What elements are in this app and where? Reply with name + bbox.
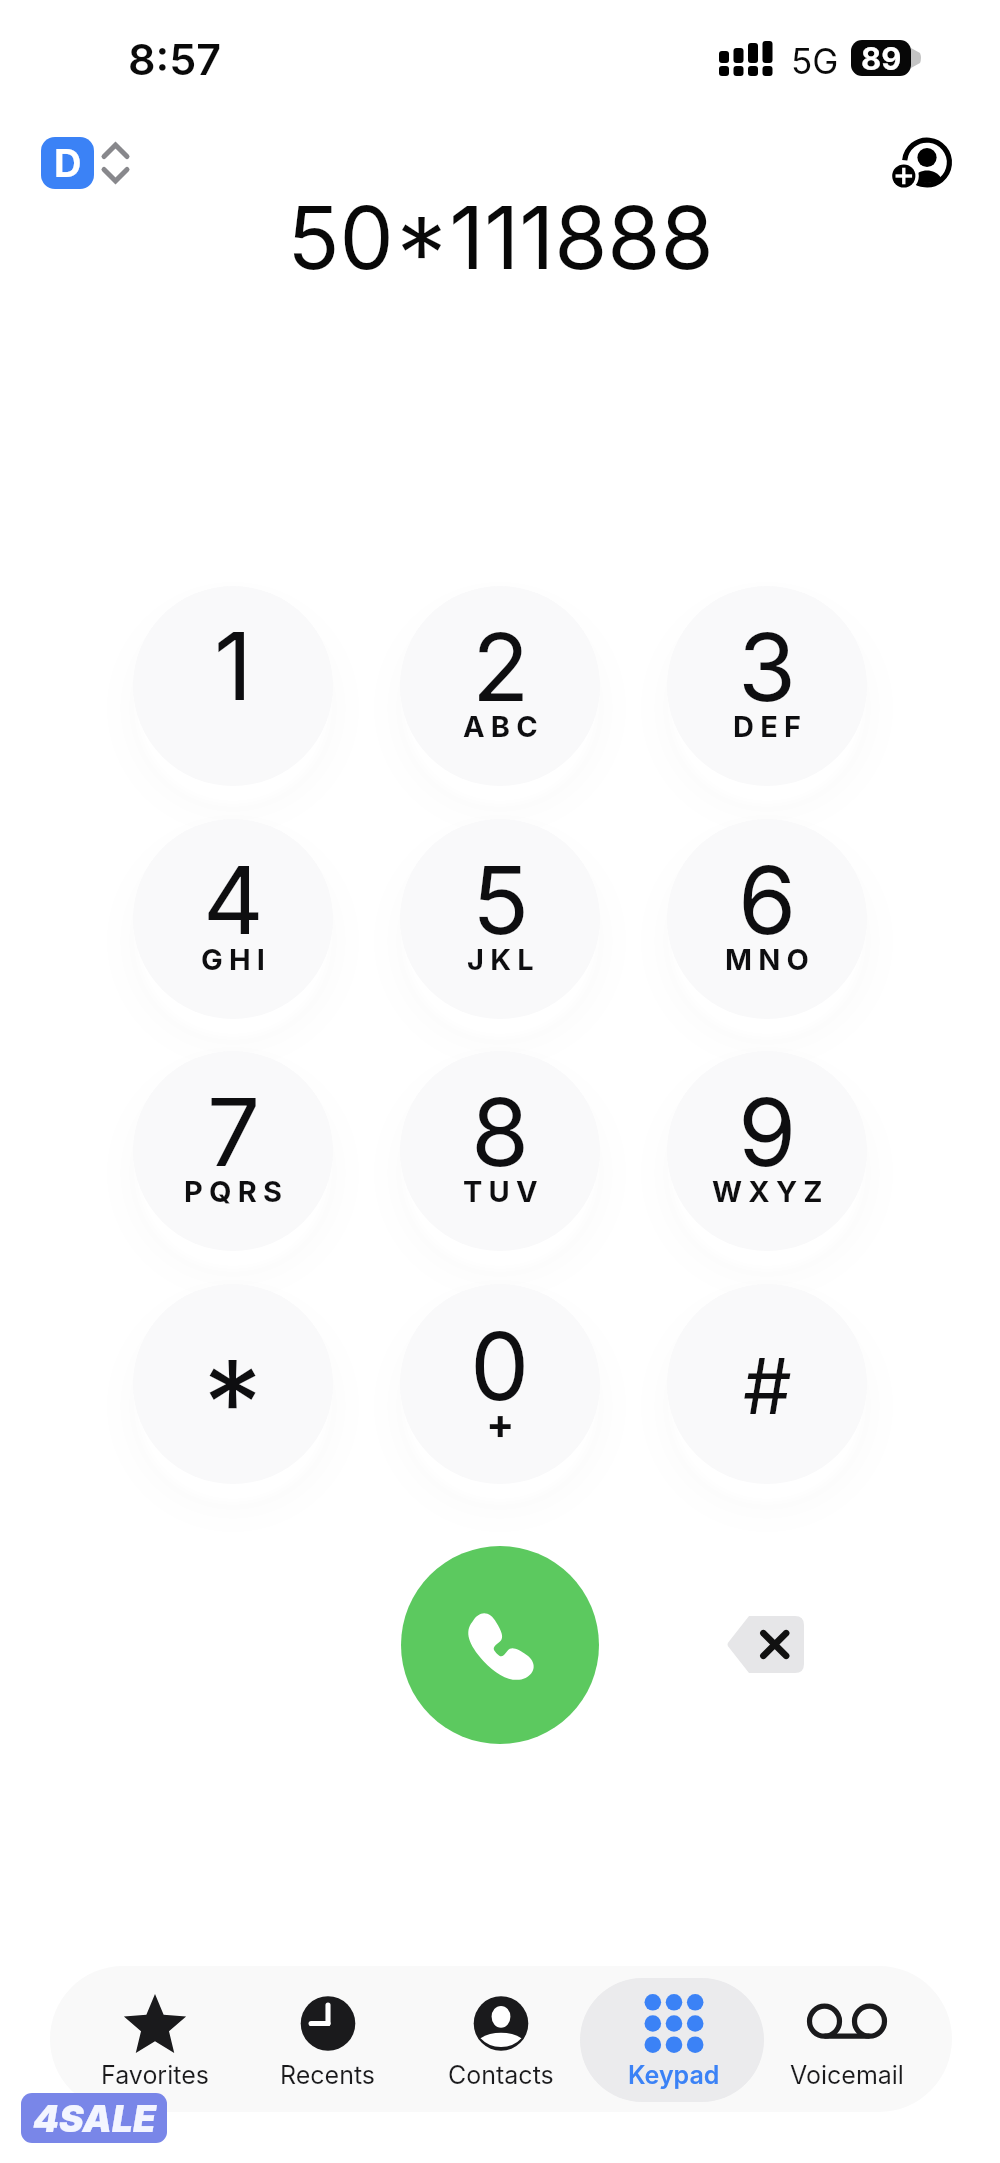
button[interactable]: 6	[667, 819, 867, 1019]
staticText: Voicemail	[790, 2060, 904, 2090]
staticText: ABC	[463, 709, 544, 744]
button[interactable]: #	[667, 1284, 867, 1484]
button[interactable]: Favorites	[70, 1978, 240, 2102]
button[interactable]: 5	[400, 819, 600, 1019]
staticText: WXYZ	[712, 1174, 829, 1209]
staticText: 4SALE	[33, 2096, 156, 2141]
button[interactable]: 3	[667, 586, 867, 786]
button[interactable]: Contacts	[416, 1978, 586, 2102]
staticText: 4	[203, 843, 264, 957]
staticText: 5G	[791, 40, 839, 82]
staticText: +	[486, 1398, 515, 1449]
staticText: Keypad	[628, 2060, 720, 2090]
button[interactable]: 4	[133, 819, 333, 1019]
button[interactable]: 2	[400, 586, 600, 786]
button[interactable]: Select SIM line	[99, 140, 132, 186]
staticText: 8:57	[128, 33, 222, 85]
staticText: *	[203, 1332, 263, 1475]
staticText: 1	[214, 609, 253, 723]
button[interactable]: 9	[667, 1051, 867, 1251]
staticText: #	[743, 1339, 792, 1432]
button[interactable]: Call	[401, 1546, 599, 1744]
staticText: Contacts	[448, 2060, 554, 2090]
staticText: 3	[738, 610, 797, 724]
staticText: Favorites	[101, 2060, 209, 2090]
staticText: 6	[738, 843, 797, 957]
staticText: JKL	[467, 942, 540, 977]
staticText: 2	[472, 610, 530, 724]
staticText: 7	[207, 1075, 261, 1189]
button[interactable]: Add contact	[888, 134, 954, 192]
staticText: TUV	[463, 1174, 544, 1209]
staticText: 9	[738, 1075, 797, 1189]
staticText: GHI	[201, 942, 272, 977]
button[interactable]: Voicemail	[762, 1978, 932, 2102]
staticText: 0	[470, 1309, 530, 1423]
button[interactable]: 1	[133, 586, 333, 786]
button[interactable]: D	[41, 137, 94, 189]
button[interactable]: Keypad	[589, 1978, 759, 2102]
button[interactable]: *	[133, 1284, 333, 1484]
staticText: D	[54, 140, 82, 186]
staticText: 50*111888	[287, 186, 714, 290]
button[interactable]: 8	[400, 1051, 600, 1251]
staticText: Recents	[280, 2060, 376, 2090]
staticText: PQRS	[184, 1174, 289, 1209]
button[interactable]: 7	[133, 1051, 333, 1251]
staticText: MNO	[725, 942, 816, 977]
button[interactable]: 0	[400, 1284, 600, 1484]
button[interactable]: Recents	[243, 1978, 413, 2102]
staticText: 8	[471, 1075, 530, 1189]
staticText: 89	[861, 40, 902, 76]
button[interactable]: Delete	[726, 1616, 804, 1673]
staticText: 5	[472, 843, 530, 957]
staticText: DEF	[733, 709, 808, 744]
